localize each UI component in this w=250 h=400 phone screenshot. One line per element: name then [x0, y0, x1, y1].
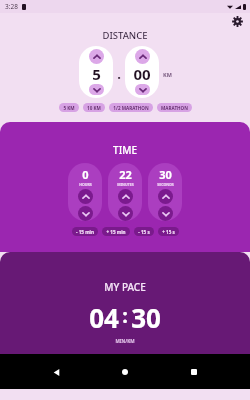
button[interactable]: Decrease — [135, 84, 150, 95]
button[interactable]: Decrease — [158, 206, 173, 221]
button[interactable]: Decrease — [89, 84, 104, 95]
staticText: : — [122, 302, 128, 329]
staticText: MY PACE — [104, 280, 146, 294]
button[interactable]: 10 KM — [83, 103, 105, 112]
button[interactable]: + 15 min — [102, 227, 130, 236]
staticText: 22 — [119, 167, 132, 182]
staticText: + 15 min — [106, 229, 126, 235]
staticText: 30 — [159, 167, 172, 182]
staticText: 5 — [92, 64, 101, 84]
button[interactable]: 0 — [68, 163, 102, 221]
staticText: HOURS — [79, 182, 92, 187]
button[interactable]: Decrease — [78, 206, 93, 221]
button[interactable]: Settings — [230, 14, 244, 28]
button[interactable]: - 15 s — [134, 227, 154, 236]
button[interactable]: - 15 min — [72, 227, 98, 236]
button[interactable]: Home — [112, 359, 138, 385]
staticText: 3:28 — [5, 2, 18, 11]
button[interactable]: Increase — [125, 46, 159, 98]
staticText: 0 — [82, 167, 89, 182]
staticText: MINUTES — [117, 182, 134, 187]
button[interactable]: Increase — [78, 189, 93, 204]
button[interactable]: Recents — [181, 359, 207, 385]
button[interactable]: Increase — [79, 46, 113, 98]
button[interactable]: Increase — [118, 189, 133, 204]
button[interactable]: Increase — [135, 49, 150, 64]
button[interactable]: 22 — [108, 163, 142, 221]
button[interactable]: Increase — [89, 49, 104, 64]
staticText: SECONDS — [157, 182, 174, 187]
button[interactable]: + 15 s — [158, 227, 179, 236]
staticText: 5 KM — [63, 105, 75, 111]
staticText: 00 — [133, 64, 151, 84]
button[interactable]: Increase — [158, 189, 173, 204]
staticText: + 15 s — [162, 229, 175, 235]
staticText: - 15 s — [138, 229, 150, 235]
staticText: TIME — [113, 143, 137, 157]
staticText: - 15 min — [76, 229, 94, 235]
staticText: 10 KM — [87, 105, 101, 111]
staticText: . — [117, 65, 121, 83]
staticText: KM — [163, 71, 172, 78]
button[interactable]: Decrease — [118, 206, 133, 221]
staticText: DISTANCE — [102, 29, 148, 42]
button[interactable]: 5 KM — [59, 103, 79, 112]
staticText: MIN/KM — [115, 338, 135, 344]
staticText: 04 — [89, 300, 119, 335]
staticText: 30 — [131, 300, 161, 335]
button[interactable]: 1/2 MARATHON — [109, 103, 153, 112]
button[interactable]: MARATHON — [157, 103, 192, 112]
button[interactable]: Back — [43, 359, 69, 385]
staticText: MARATHON — [161, 105, 188, 111]
staticText: 1/2 MARATHON — [113, 105, 149, 111]
button[interactable]: 30 — [148, 163, 182, 221]
